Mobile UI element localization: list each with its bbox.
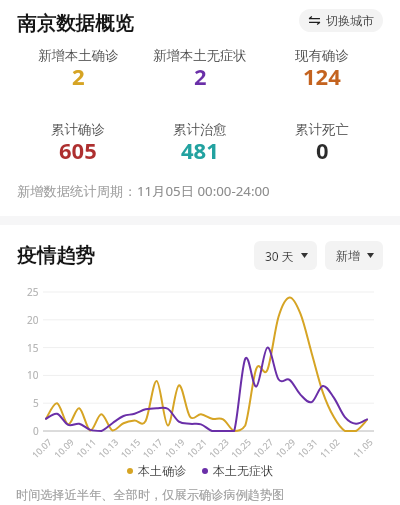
staticText: 时间选择近半年、全部时，仅展示确诊病例趋势图 xyxy=(16,487,285,502)
staticText: 2 xyxy=(72,61,85,85)
staticText: 0 xyxy=(316,135,329,159)
staticText: 新增本土确诊 xyxy=(38,47,119,64)
staticText: 累计死亡 xyxy=(295,121,349,138)
staticText: 新增 xyxy=(336,248,360,263)
button[interactable]: 新增本土确诊 xyxy=(17,47,139,88)
staticText: 新增本土无症状 xyxy=(153,47,247,64)
staticText: 累计治愈 xyxy=(173,121,227,138)
staticText: 481 xyxy=(181,135,219,159)
button[interactable]: 新增本土无症状 xyxy=(139,47,261,88)
button[interactable]: 累计死亡 xyxy=(261,121,383,162)
button[interactable]: 切换城市 xyxy=(299,9,383,32)
staticText: 切换城市 xyxy=(326,13,374,28)
staticText: 南京数据概览 xyxy=(17,11,134,36)
staticText: 30 天 xyxy=(265,248,294,263)
button[interactable]: 累计确诊 xyxy=(17,121,139,162)
staticText: 124 xyxy=(303,61,341,85)
button[interactable]: 新增 xyxy=(325,241,383,270)
staticText: 本土确诊 xyxy=(138,463,186,478)
staticText: 2 xyxy=(194,61,207,85)
staticText: 本土无症状 xyxy=(213,463,273,478)
staticText: 新增数据统计周期： xyxy=(17,183,137,200)
button[interactable]: 30 天 xyxy=(254,241,317,270)
staticText: 疫情趋势 xyxy=(17,243,95,268)
staticText: 现有确诊 xyxy=(295,47,349,64)
staticText: 累计确诊 xyxy=(51,121,105,138)
staticText: 605 xyxy=(59,135,97,159)
button[interactable]: 累计治愈 xyxy=(139,121,261,162)
staticText: 11月05日 00:00-24:00 xyxy=(137,182,270,200)
button[interactable]: 现有确诊 xyxy=(261,47,383,88)
